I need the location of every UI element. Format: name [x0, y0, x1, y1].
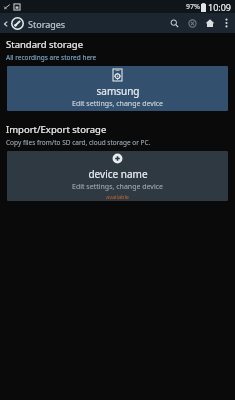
staticText: Edit settings, change device	[72, 99, 163, 109]
staticText: Standard storage	[6, 38, 84, 51]
staticText: Edit settings, change device	[72, 182, 163, 192]
button[interactable]: More options	[219, 16, 233, 30]
staticText: All recordings are stored here	[6, 53, 97, 62]
staticText: Storages	[28, 18, 66, 30]
staticText: available	[106, 193, 129, 200]
button[interactable]: device name	[7, 151, 228, 201]
button[interactable]: Clear	[183, 14, 201, 32]
button[interactable]: Home	[201, 14, 219, 32]
staticText: samsung	[96, 84, 140, 98]
staticText: Import/Export storage	[6, 123, 107, 136]
staticText: 97%	[186, 2, 200, 12]
staticText: device name	[88, 167, 148, 181]
staticText: Copy files from/to SD card, cloud storag…	[6, 138, 151, 147]
button[interactable]: Search	[165, 14, 183, 32]
other: Navigate up	[2, 20, 10, 28]
button[interactable]: samsung	[7, 66, 228, 111]
staticText: 10:09	[208, 1, 232, 13]
button[interactable]: Navigate up	[0, 17, 70, 30]
